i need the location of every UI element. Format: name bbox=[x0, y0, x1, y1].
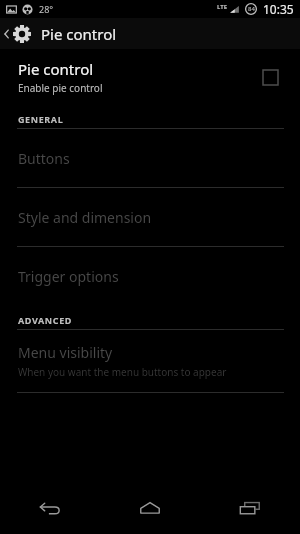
staticText: Pie control bbox=[18, 59, 94, 79]
staticText: Buttons bbox=[18, 149, 70, 168]
staticText: Enable pie control bbox=[18, 81, 103, 95]
staticText: Trigger options bbox=[18, 267, 119, 286]
button[interactable]: Navigate up, Pie control bbox=[0, 18, 300, 49]
staticText: 10:35 bbox=[263, 1, 294, 17]
staticText: Style and dimension bbox=[18, 208, 152, 227]
staticText: GENERAL bbox=[18, 113, 64, 125]
button[interactable]: Trigger options bbox=[0, 247, 300, 305]
button[interactable]: Recent apps bbox=[200, 482, 300, 534]
staticText: LTE bbox=[217, 3, 228, 11]
button[interactable]: Pie control bbox=[0, 49, 300, 104]
staticText: ADVANCED bbox=[18, 314, 72, 326]
button[interactable]: Menu visibility bbox=[0, 330, 300, 392]
staticText: When you want the menu buttons to appear bbox=[18, 365, 227, 379]
button[interactable]: Style and dimension bbox=[0, 188, 300, 246]
staticText: Pie control bbox=[41, 24, 117, 44]
staticText: 84 bbox=[248, 5, 255, 13]
button[interactable]: Home bbox=[100, 482, 200, 534]
button[interactable]: Enable pie control checkbox bbox=[256, 63, 284, 91]
button[interactable]: Buttons bbox=[0, 129, 300, 187]
staticText: Menu visibility bbox=[18, 343, 113, 362]
button[interactable]: Back bbox=[0, 482, 100, 534]
staticText: 28° bbox=[39, 3, 54, 15]
